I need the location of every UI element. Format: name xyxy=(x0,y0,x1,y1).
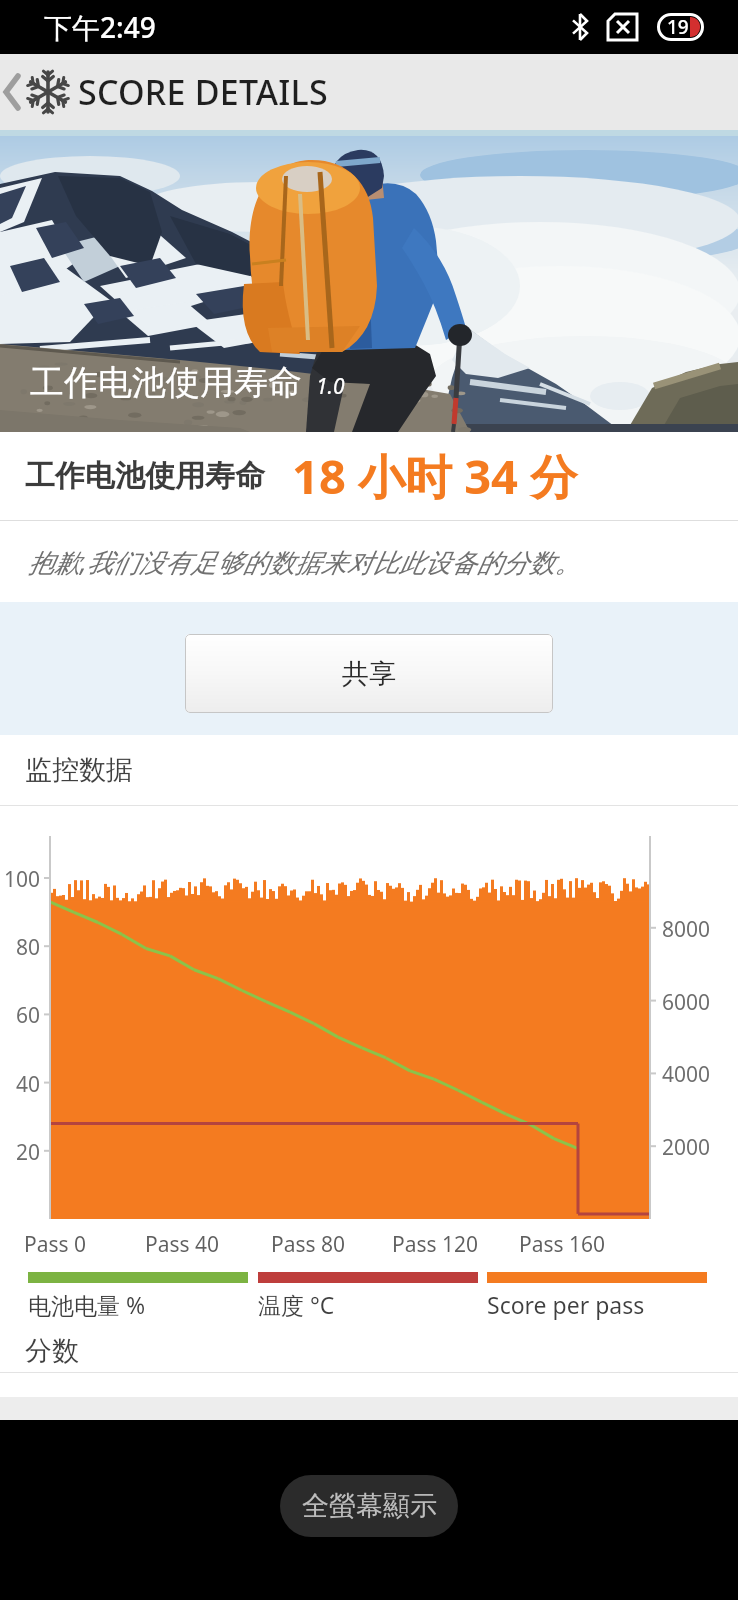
staticText: Pass 120 xyxy=(385,1230,485,1259)
staticText: Score per pass xyxy=(487,1289,645,1320)
staticText: 40 xyxy=(0,1070,40,1099)
staticText: 电池电量 % xyxy=(28,1289,146,1320)
staticText: 监控数据 xyxy=(25,753,133,787)
staticText: 100 xyxy=(0,865,40,894)
staticText: Pass 0 xyxy=(5,1230,105,1259)
staticText: 19 xyxy=(667,14,689,40)
staticText: SCORE DETAILS xyxy=(78,69,328,115)
staticText: 全螢幕顯示 xyxy=(302,1489,437,1523)
staticText: 18 小时 34 分 xyxy=(292,444,578,508)
staticText: 工作电池使用寿命 xyxy=(25,457,265,495)
staticText: 温度 °C xyxy=(258,1289,335,1320)
staticText: 共享 xyxy=(342,657,396,691)
button[interactable]: 全螢幕顯示 xyxy=(280,1475,458,1537)
staticText: Pass 160 xyxy=(512,1230,612,1259)
button[interactable]: 共享 xyxy=(185,634,553,713)
staticText: 2000 xyxy=(662,1133,711,1162)
staticText: 8000 xyxy=(662,915,711,944)
staticText: 20 xyxy=(0,1138,40,1167)
staticText: 抱歉,我们没有足够的数据来对比此设备的分数。 xyxy=(28,544,581,580)
button[interactable]: SCORE DETAILS xyxy=(0,54,738,130)
staticText: 80 xyxy=(0,933,40,962)
staticText: 60 xyxy=(0,1001,40,1030)
staticText: 下午2:49 xyxy=(44,8,156,46)
staticText: 分数 xyxy=(25,1334,79,1368)
staticText: 4000 xyxy=(662,1060,711,1089)
staticText: Pass 80 xyxy=(258,1230,358,1259)
staticText: 6000 xyxy=(662,988,711,1017)
staticText: 工作电池使用寿命 xyxy=(30,361,302,404)
staticText: 1.0 xyxy=(316,372,345,401)
staticText: Pass 40 xyxy=(132,1230,232,1259)
